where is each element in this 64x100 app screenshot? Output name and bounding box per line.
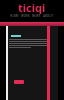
button[interactable]: HOME xyxy=(9,14,20,18)
staticText: HOME xyxy=(10,14,19,18)
staticText: ABOUT xyxy=(43,14,54,18)
button[interactable]: NEWS xyxy=(31,14,42,18)
staticText: ticiqi xyxy=(18,0,46,14)
button[interactable]: WORK xyxy=(20,14,31,18)
staticText: NEWS xyxy=(32,14,41,18)
button[interactable]: ABOUT xyxy=(42,14,55,18)
button[interactable]: Get started xyxy=(14,80,24,84)
staticText: WORK xyxy=(21,14,30,18)
